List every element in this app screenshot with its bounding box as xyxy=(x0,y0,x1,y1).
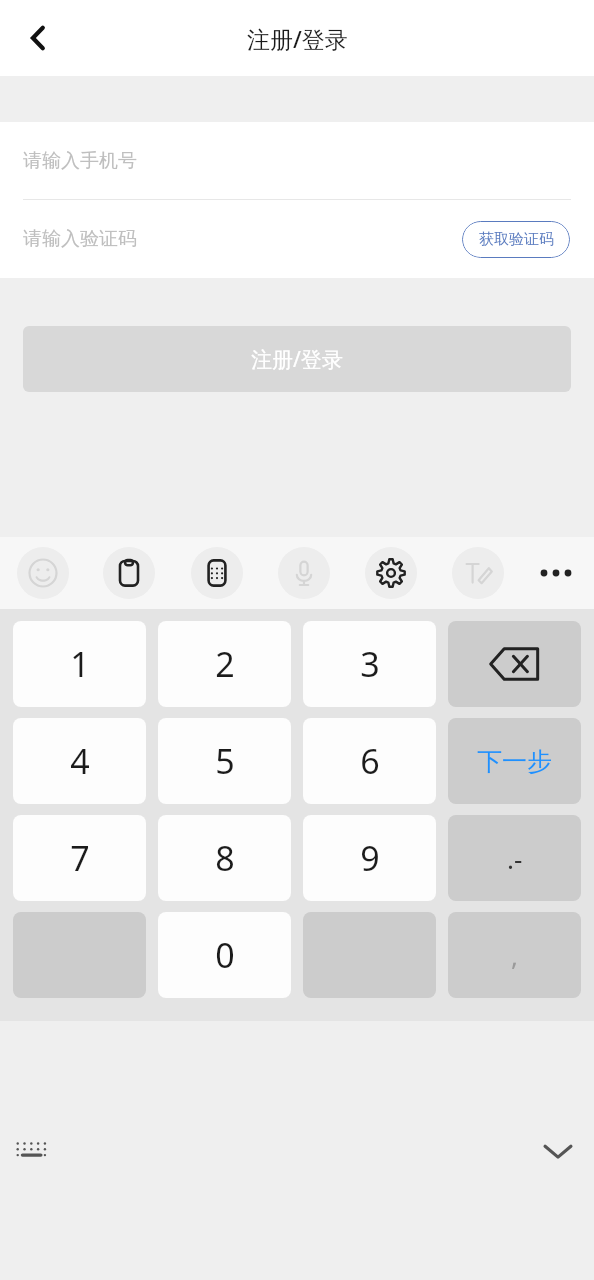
staticText: 3 xyxy=(360,641,380,687)
button[interactable]: More xyxy=(521,537,591,609)
button[interactable]: 5 xyxy=(158,718,291,804)
staticText: 1 xyxy=(70,641,90,687)
staticText: .- xyxy=(507,841,523,876)
button[interactable]: 2 xyxy=(158,621,291,707)
button[interactable]: Settings xyxy=(365,547,417,599)
staticText: , xyxy=(511,938,518,973)
button[interactable]: 下一步 xyxy=(448,718,581,804)
staticText: 6 xyxy=(360,738,380,784)
button[interactable]: 获取验证码 xyxy=(462,221,570,258)
staticText: 5 xyxy=(215,738,235,784)
button[interactable]: 0 xyxy=(158,912,291,998)
button[interactable]: 1 xyxy=(13,621,146,707)
button[interactable]: 7 xyxy=(13,815,146,901)
staticText: 8 xyxy=(215,835,235,881)
button[interactable]: Handwriting xyxy=(452,547,504,599)
button[interactable]: Clipboard xyxy=(103,547,155,599)
staticText: 注册/登录 xyxy=(251,345,343,374)
button[interactable]: 8 xyxy=(158,815,291,901)
button[interactable]: Voice input xyxy=(278,547,330,599)
staticText: 请输入手机号 xyxy=(23,149,137,173)
button[interactable]: Hide keyboard xyxy=(530,1123,586,1179)
button[interactable]: 请输入验证码 xyxy=(23,227,137,251)
button[interactable]: 注册/登录 xyxy=(23,326,571,392)
button[interactable]: 4 xyxy=(13,718,146,804)
staticText: 注册/登录 xyxy=(247,23,348,54)
button[interactable]: Switch keyboard xyxy=(4,1123,60,1179)
button[interactable]: Back xyxy=(0,0,76,76)
staticText: 4 xyxy=(70,738,90,784)
button[interactable]: Keypad xyxy=(191,547,243,599)
staticText: 9 xyxy=(360,835,380,881)
staticText: 获取验证码 xyxy=(479,230,554,249)
staticText: 0 xyxy=(215,932,235,978)
button[interactable]: 3 xyxy=(303,621,436,707)
button[interactable]: 9 xyxy=(303,815,436,901)
button[interactable]: 请输入手机号 xyxy=(0,122,594,200)
staticText: 2 xyxy=(215,641,235,687)
button[interactable]: Emoji xyxy=(17,547,69,599)
staticText: 7 xyxy=(70,835,90,881)
button[interactable]: .- xyxy=(448,815,581,901)
button[interactable]: Backspace xyxy=(448,621,581,707)
button[interactable]: 6 xyxy=(303,718,436,804)
staticText: 下一步 xyxy=(477,746,552,777)
